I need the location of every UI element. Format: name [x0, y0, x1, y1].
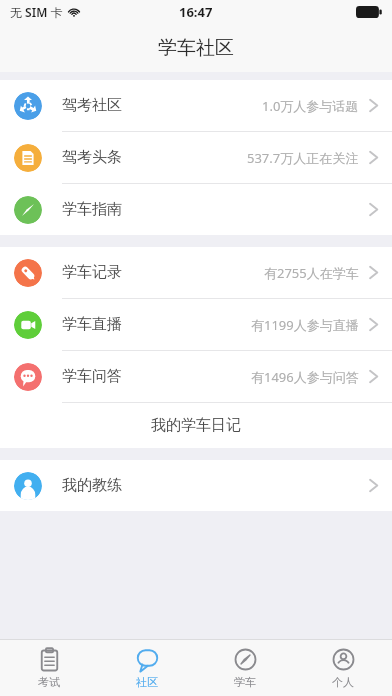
staticText: 537.7万人正在关注 [247, 149, 359, 167]
staticText: 我的教练 [62, 476, 122, 495]
button[interactable]: 考试 [0, 647, 98, 689]
staticText: 个人 [332, 675, 354, 689]
staticText: 学车 [234, 675, 256, 689]
staticText: 学车指南 [62, 200, 122, 219]
staticText: 学车问答 [62, 367, 122, 386]
staticText: 社区 [136, 675, 158, 689]
staticText: 1.0万人参与话题 [262, 97, 359, 115]
button[interactable]: 学车指南 [0, 184, 392, 235]
staticText: 无 SIM 卡 [10, 4, 63, 20]
button[interactable]: 我的教练 [0, 460, 392, 511]
button[interactable]: 社区 [98, 647, 196, 689]
staticText: 我的学车日记 [151, 416, 241, 435]
button[interactable]: 学车记录 [0, 247, 392, 299]
staticText: 考试 [38, 675, 60, 689]
button[interactable]: 驾考头条 [0, 132, 392, 184]
staticText: 16:47 [179, 3, 213, 21]
button[interactable]: 学车问答 [0, 351, 392, 403]
staticText: 学车直播 [62, 315, 122, 334]
staticText: 学车社区 [158, 36, 234, 60]
button[interactable]: 学车 [196, 647, 294, 689]
staticText: 有2755人在学车 [264, 264, 359, 282]
button[interactable]: 驾考社区 [0, 80, 392, 132]
staticText: 学车记录 [62, 263, 122, 282]
staticText: 有1199人参与直播 [251, 316, 359, 334]
staticText: 驾考头条 [62, 148, 122, 167]
button[interactable]: 学车直播 [0, 299, 392, 351]
staticText: 驾考社区 [62, 96, 122, 115]
button[interactable]: 个人 [294, 647, 392, 689]
staticText: 有1496人参与问答 [251, 368, 359, 386]
button[interactable]: 我的学车日记 [0, 403, 392, 448]
